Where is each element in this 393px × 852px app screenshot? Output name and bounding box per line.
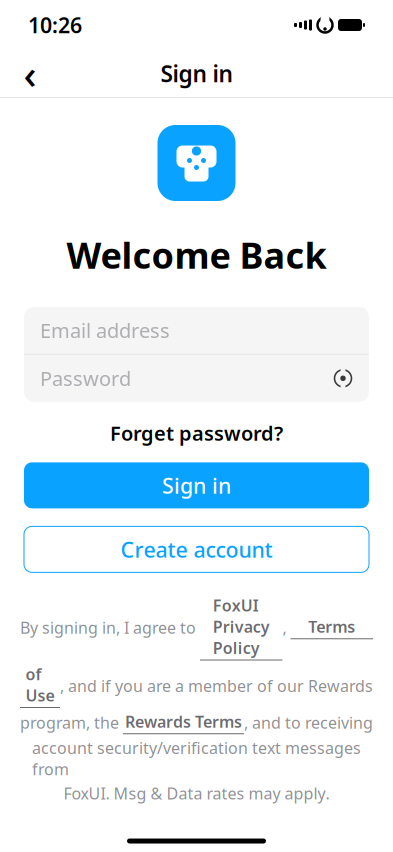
staticText: Password: [40, 365, 131, 392]
button[interactable]: Password: [24, 355, 369, 402]
staticText: program, the: [20, 712, 123, 733]
staticText: ‹: [23, 47, 36, 100]
staticText: Rewards Terms: [125, 711, 242, 732]
button[interactable]: Back: [8, 51, 52, 95]
staticText: Terms: [308, 616, 355, 637]
staticText: FoxUI Privacy Policy: [213, 595, 270, 658]
button[interactable]: Create account: [24, 526, 369, 572]
staticText: Forget password?: [110, 420, 283, 446]
staticText: Sign in: [160, 58, 232, 88]
staticText: of Use: [25, 663, 54, 706]
staticText: 10:26: [28, 11, 82, 39]
staticText: Welcome Back: [66, 231, 326, 279]
staticText: , and if you are a member of our Rewards: [60, 675, 373, 696]
staticText: FoxUI. Msg & Data rates may apply.: [63, 783, 329, 804]
button[interactable]: Sign in: [24, 462, 369, 508]
staticText: Sign in: [162, 471, 231, 499]
staticText: , and to receiving: [244, 712, 373, 733]
staticText: Email address: [40, 317, 170, 344]
staticText: ,: [282, 617, 290, 638]
button[interactable]: Forget password?: [98, 413, 295, 453]
staticText: account security/verification text messa…: [32, 737, 361, 780]
button[interactable]: Email address: [24, 307, 369, 354]
staticText: By signing in, I agree to: [20, 617, 200, 638]
staticText: Create account: [120, 535, 272, 563]
